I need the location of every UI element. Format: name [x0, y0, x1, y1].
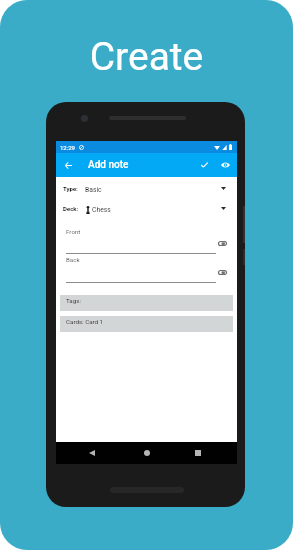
button[interactable]: Save: [192, 153, 217, 177]
staticText: Tags:: [66, 297, 81, 304]
staticText: Basic: [85, 186, 102, 194]
button[interactable]: Navigate up: [56, 153, 81, 177]
staticText: Front: [66, 228, 81, 235]
staticText: Back: [66, 256, 80, 263]
button[interactable]: Tags:: [60, 295, 233, 311]
staticText: 12:29: [60, 144, 75, 151]
button[interactable]: Home: [131, 442, 163, 464]
button[interactable]: Recent apps: [182, 442, 214, 464]
button[interactable]: Back: [76, 442, 108, 464]
button[interactable]: Back: [56, 252, 237, 284]
staticText: Add note: [88, 159, 129, 171]
button[interactable]: Preview: [213, 153, 238, 177]
button[interactable]: Front: [56, 224, 237, 255]
staticText: Create: [0, 34, 293, 80]
button[interactable]: Deck:: [56, 201, 237, 215]
staticText: Chess: [92, 206, 111, 214]
button[interactable]: Cards: Card 1: [60, 316, 233, 332]
staticText: Cards: Card 1: [66, 318, 104, 325]
button[interactable]: Type:: [56, 181, 237, 195]
staticText: Type:: [63, 185, 78, 192]
staticText: Deck:: [63, 205, 79, 212]
